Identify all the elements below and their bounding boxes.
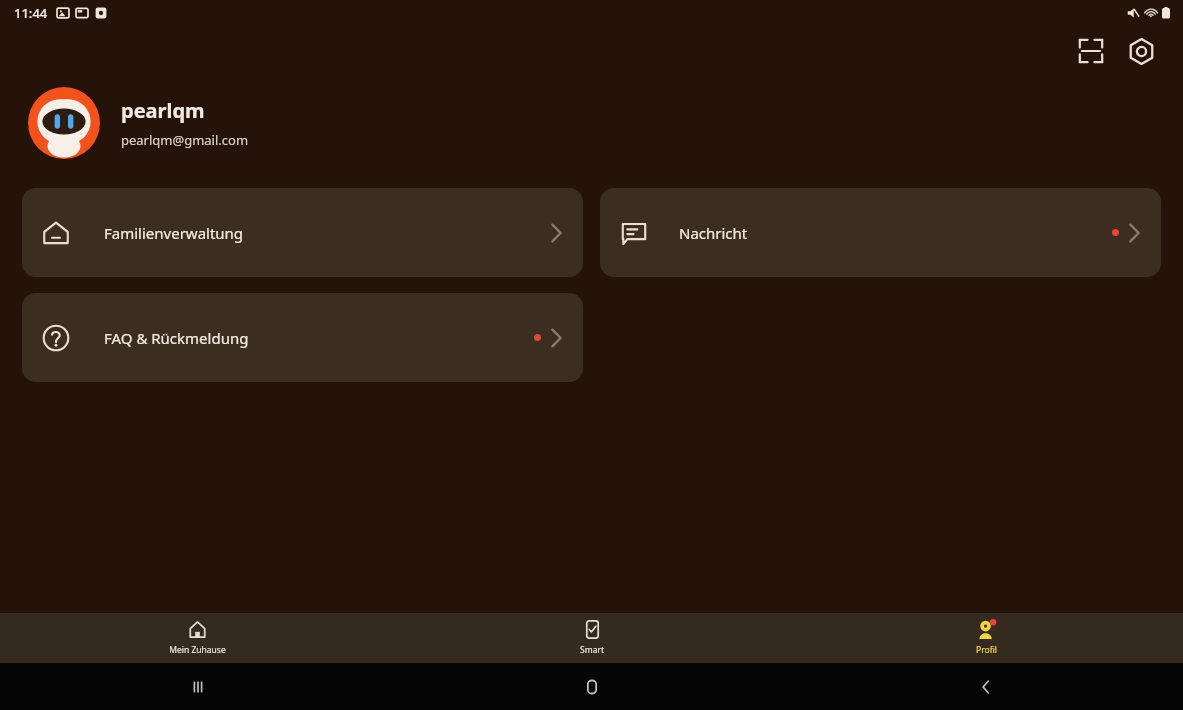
button[interactable]: Smart: [395, 613, 789, 663]
staticText: Smart: [580, 644, 604, 656]
button[interactable]: Back: [789, 663, 1183, 710]
button[interactable]: Scan code: [1069, 29, 1113, 73]
button[interactable]: Home: [395, 663, 789, 710]
staticText: 11:44: [14, 4, 48, 22]
staticText: FAQ & Rückmeldung: [104, 328, 534, 348]
staticText: Mein Zuhause: [169, 644, 226, 656]
button[interactable]: Settings: [1119, 29, 1163, 73]
staticText: Familienverwaltung: [104, 223, 550, 243]
staticText: pearlqm@gmail.com: [121, 131, 249, 149]
button[interactable]: Mein Zuhause: [0, 613, 395, 663]
button[interactable]: FAQ & Rückmeldung: [22, 293, 583, 382]
staticText: Nachricht: [679, 223, 1112, 243]
staticText: Profil: [976, 644, 997, 656]
button[interactable]: pearlqm: [28, 87, 1183, 159]
button[interactable]: Nachricht: [600, 188, 1161, 277]
staticText: pearlqm: [121, 97, 205, 124]
button[interactable]: Recent apps: [0, 663, 395, 710]
button[interactable]: Familienverwaltung: [22, 188, 583, 277]
button[interactable]: Profil: [789, 613, 1183, 663]
